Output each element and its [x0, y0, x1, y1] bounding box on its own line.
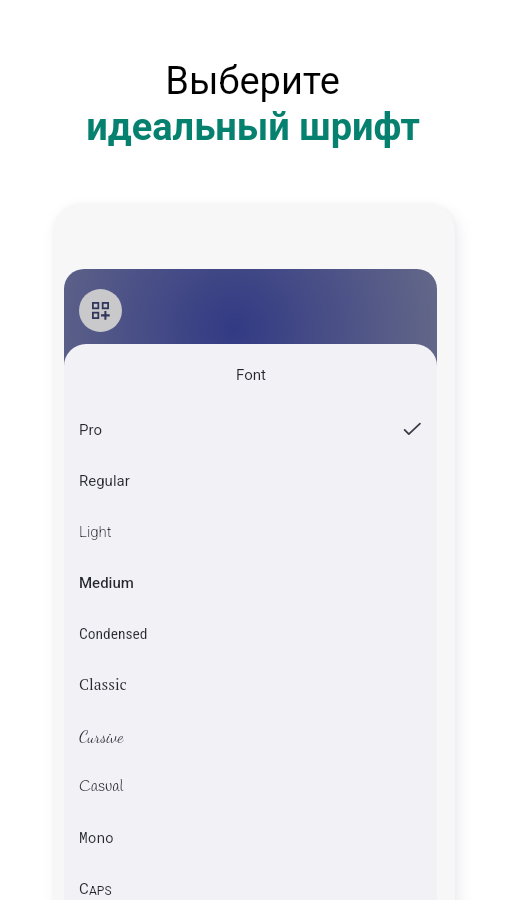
staticText: Casual	[79, 776, 124, 797]
button[interactable]: Light	[64, 506, 437, 557]
staticText: Mono	[79, 828, 114, 847]
staticText: Condensed	[79, 625, 148, 643]
staticText: APS	[89, 884, 112, 898]
button[interactable]: Condensed	[64, 608, 437, 659]
button[interactable]: Mono	[64, 812, 437, 863]
button[interactable]: Regular	[64, 455, 437, 506]
staticText: идеальный шрифт	[86, 105, 420, 150]
button[interactable]: Medium	[64, 557, 437, 608]
button[interactable]: Cursive	[64, 710, 437, 761]
staticText: Classic	[79, 674, 127, 695]
button[interactable]: Add widget	[79, 289, 122, 332]
button[interactable]: Classic	[64, 659, 437, 710]
staticText: Regular	[79, 472, 130, 490]
button[interactable]: Casual	[64, 761, 437, 812]
button[interactable]: C	[64, 863, 437, 900]
staticText: C	[79, 880, 89, 898]
button[interactable]: Pro	[64, 404, 437, 455]
staticText: Light	[79, 523, 112, 541]
staticText: Medium	[79, 574, 134, 592]
staticText: Pro	[79, 421, 102, 439]
staticText: Font	[236, 366, 266, 384]
staticText: Выберите	[165, 59, 340, 104]
staticText: Cursive	[79, 726, 124, 746]
